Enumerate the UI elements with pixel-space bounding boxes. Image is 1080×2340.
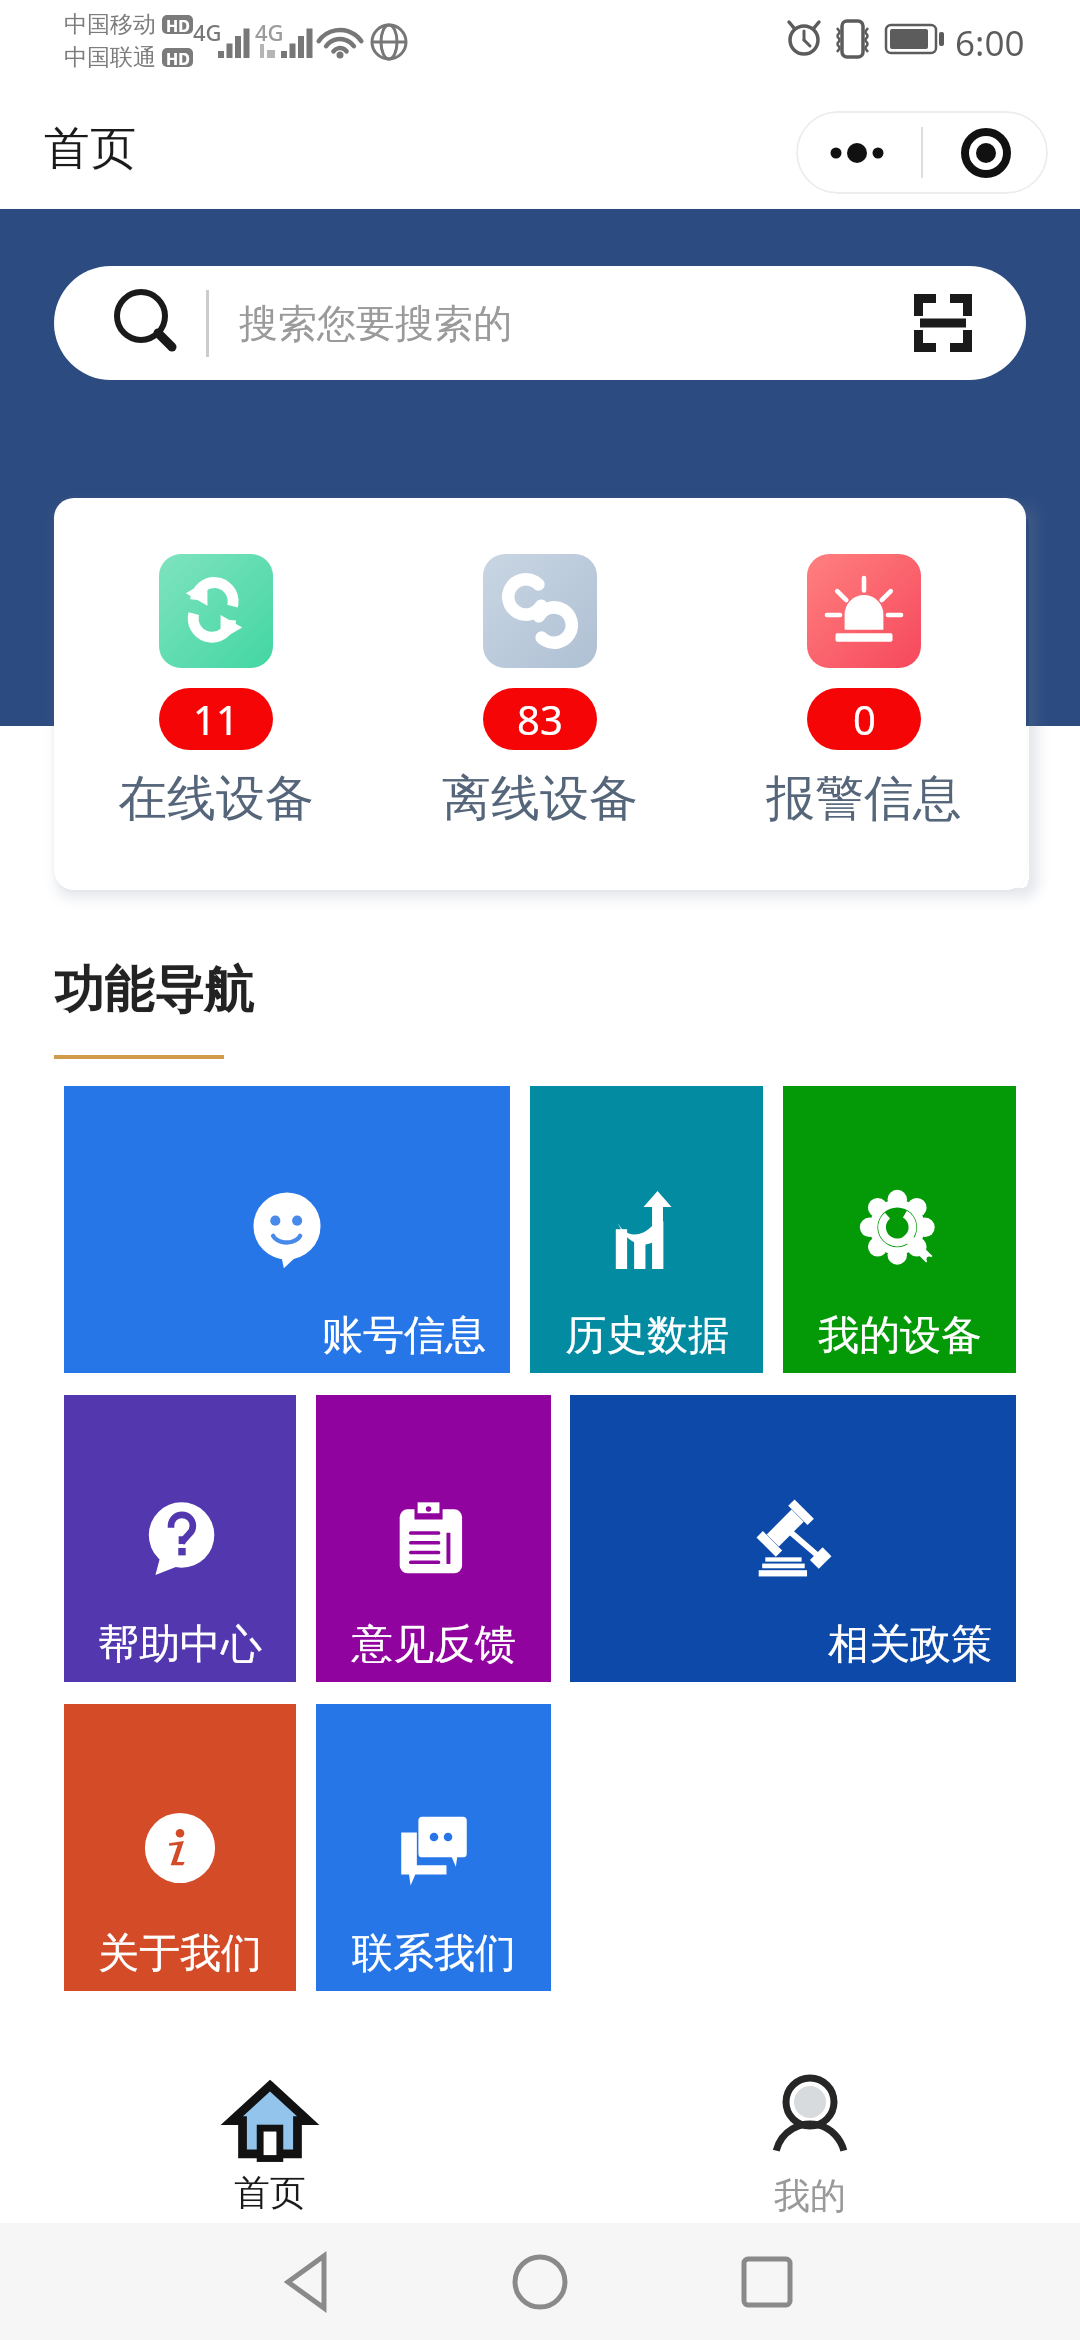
button[interactable]: 返回 <box>246 2223 366 2340</box>
staticText: 在线设备 <box>118 768 314 830</box>
staticText: 关于我们 <box>98 1928 262 1980</box>
staticText: 账号信息 <box>322 1310 486 1362</box>
staticText: 功能导航 <box>54 959 254 1022</box>
staticText: 相关政策 <box>828 1619 992 1671</box>
staticText: HD <box>166 15 190 34</box>
button[interactable]: 账号信息 <box>64 1086 510 1373</box>
staticText: 中国移动 <box>64 10 156 39</box>
staticText: 我的 <box>774 2173 846 2218</box>
button[interactable]: 历史数据 <box>530 1086 763 1373</box>
staticText: 意见反馈 <box>352 1619 516 1671</box>
staticText: 首页 <box>234 2170 306 2215</box>
staticText: 83 <box>517 692 563 746</box>
button[interactable]: 意见反馈 <box>316 1395 551 1682</box>
staticText: HD <box>166 48 190 67</box>
staticText: 我的设备 <box>818 1310 982 1362</box>
staticText: 搜索您要搜索的 <box>239 299 512 348</box>
staticText: 中国联通 <box>64 43 156 72</box>
button[interactable]: 帮助中心 <box>64 1395 296 1682</box>
button[interactable]: 最近任务 <box>707 2223 827 2340</box>
button[interactable]: 我的 <box>540 2066 1080 2229</box>
staticText: 0 <box>853 692 876 746</box>
button[interactable]: 搜索您要搜索的 <box>54 266 1026 380</box>
button[interactable]: 11 <box>54 498 378 830</box>
button[interactable]: 更多 <box>796 111 921 194</box>
staticText: 4G <box>255 17 284 47</box>
button[interactable]: 主屏幕 <box>480 2223 600 2340</box>
button[interactable]: 关闭 <box>923 111 1048 194</box>
button[interactable]: 联系我们 <box>316 1704 551 1991</box>
button[interactable]: 我的设备 <box>783 1086 1016 1373</box>
button[interactable]: 关于我们 <box>64 1704 296 1991</box>
staticText: 11 <box>193 692 239 746</box>
button[interactable]: 相关政策 <box>570 1395 1016 1682</box>
button[interactable]: 0 <box>702 498 1026 830</box>
button[interactable]: 83 <box>378 498 702 830</box>
staticText: 联系我们 <box>352 1928 516 1980</box>
staticText: 离线设备 <box>442 768 638 830</box>
staticText: 4G <box>193 17 222 47</box>
button[interactable]: 首页 <box>0 2066 540 2229</box>
staticText: 6:00 <box>955 19 1025 67</box>
staticText: 历史数据 <box>565 1310 729 1362</box>
staticText: 报警信息 <box>766 768 962 830</box>
staticText: 首页 <box>44 120 136 178</box>
button[interactable]: 扫一扫 <box>914 294 972 352</box>
staticText: 帮助中心 <box>98 1619 262 1671</box>
